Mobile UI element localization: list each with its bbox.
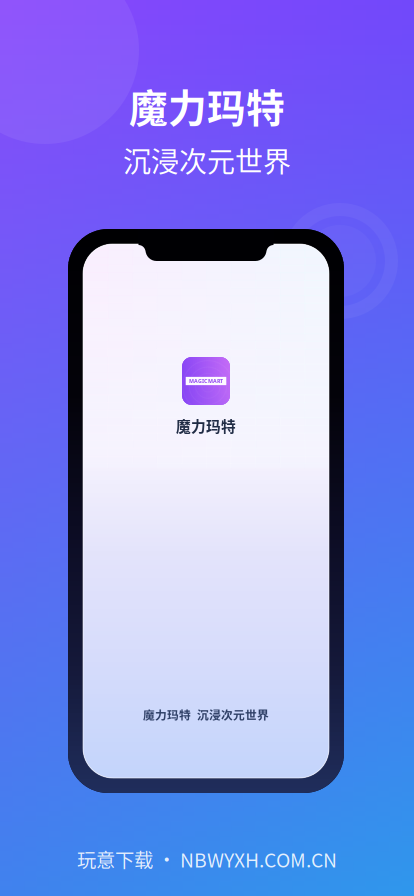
staticText: 沉浸次元世界 [123,140,291,180]
staticText: 魔力玛特 沉浸次元世界 [143,706,269,723]
staticText: 魔力玛特 [176,415,236,436]
button[interactable]: 魔力玛特 [176,357,236,436]
button[interactable]: 玩意下载 • NBWYXH.COM.CN [65,839,349,879]
staticText: 玩意下载 • NBWYXH.COM.CN [77,845,337,873]
staticText: 魔力玛特 [129,78,285,134]
staticText: MAGIC MART [189,377,223,385]
